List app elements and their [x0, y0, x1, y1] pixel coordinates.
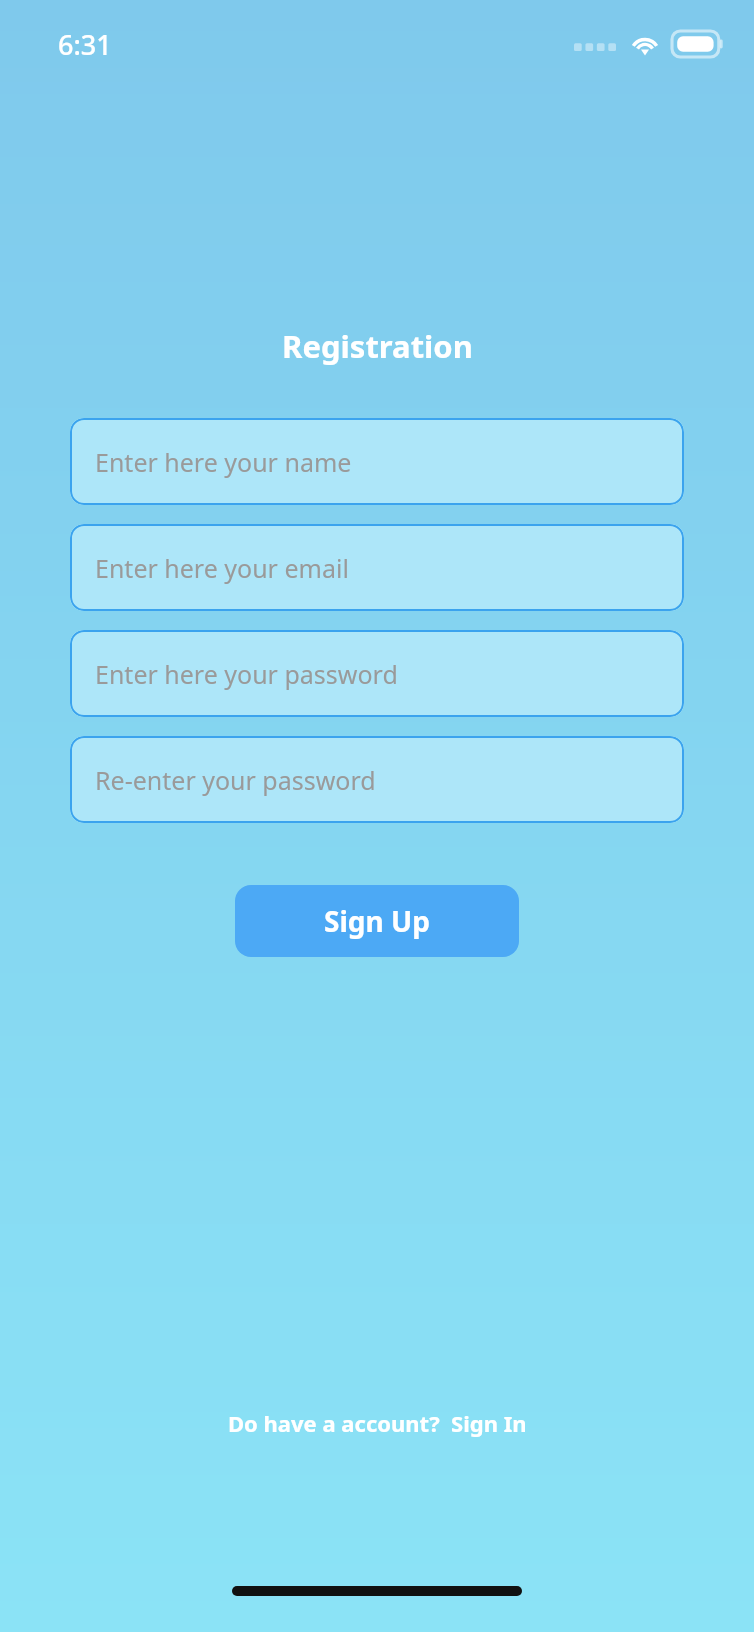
staticText: Enter here your password	[95, 657, 398, 691]
button[interactable]: Do have a account? Sign In	[228, 1408, 527, 1438]
button[interactable]: Enter here your email	[70, 524, 684, 611]
button[interactable]: Re-enter your password	[70, 736, 684, 823]
button[interactable]: Sign Up	[235, 885, 519, 957]
staticText: Sign Up	[324, 902, 430, 940]
staticText: Registration	[282, 325, 473, 367]
staticText: Do have a account? Sign In	[228, 1408, 527, 1438]
staticText: Enter here your email	[95, 551, 349, 585]
staticText: Re-enter your password	[95, 763, 376, 797]
button[interactable]: Enter here your password	[70, 630, 684, 717]
staticText: Enter here your name	[95, 445, 352, 479]
button[interactable]: Enter here your name	[70, 418, 684, 505]
staticText: 6:31	[58, 26, 112, 63]
